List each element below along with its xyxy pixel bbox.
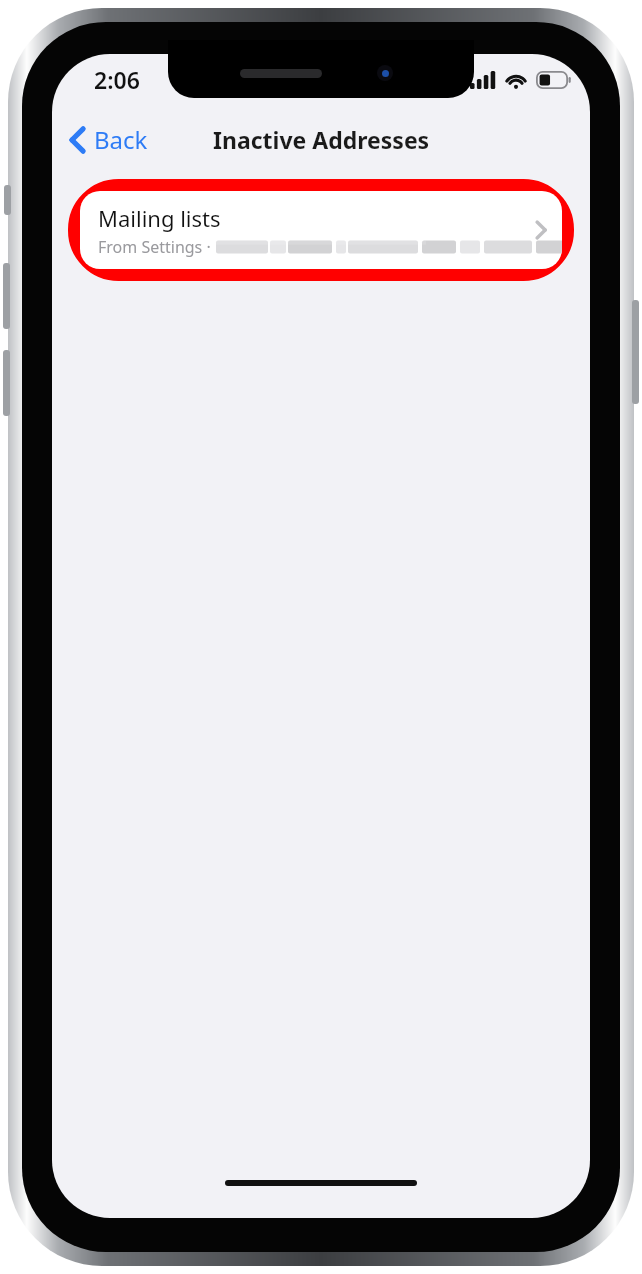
staticText: Inactive Addresses — [213, 124, 430, 155]
staticText: Mailing lists — [98, 203, 221, 233]
other: Open Mailing lists — [534, 219, 548, 241]
staticText: 2:06 — [94, 64, 140, 95]
button[interactable]: Mailing lists — [80, 191, 562, 269]
staticText: From Settings · — [98, 236, 211, 258]
staticText: Back — [94, 123, 148, 156]
button[interactable]: Back — [62, 117, 156, 162]
